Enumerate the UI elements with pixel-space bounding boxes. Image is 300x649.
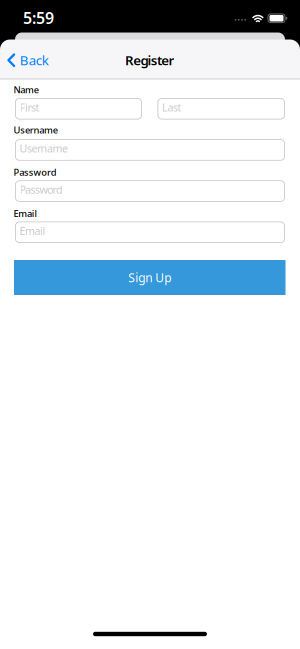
staticText: First — [20, 100, 40, 114]
staticText: Username — [20, 141, 68, 156]
staticText: Register — [125, 51, 174, 69]
button[interactable]: Username — [15, 139, 285, 161]
button[interactable]: Sign Up — [14, 260, 285, 295]
staticText: Email — [13, 207, 37, 220]
button[interactable]: First — [15, 98, 142, 119]
staticText: Email — [20, 224, 46, 238]
button[interactable]: Last — [157, 98, 285, 119]
staticText: Password — [20, 182, 63, 197]
staticText: Back — [20, 51, 49, 69]
staticText: Password — [13, 166, 57, 178]
button[interactable]: Back — [7, 51, 49, 69]
button[interactable]: Email — [15, 221, 285, 243]
button[interactable]: Password — [15, 180, 285, 202]
staticText: Last — [162, 100, 182, 114]
staticText: Name — [13, 83, 39, 96]
staticText: 5:59 — [23, 7, 54, 28]
staticText: Sign Up — [128, 269, 171, 285]
staticText: Username — [13, 124, 58, 136]
